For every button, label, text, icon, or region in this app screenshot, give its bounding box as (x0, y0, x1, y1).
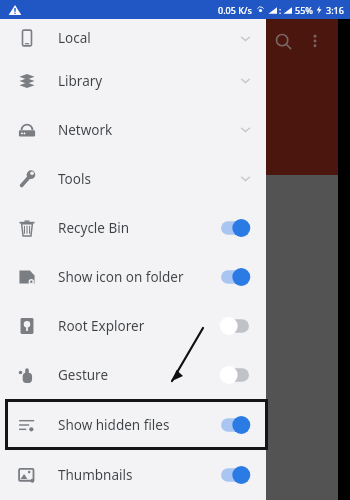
staticText: Library (58, 72, 103, 90)
staticText: Free (48, 132, 71, 147)
button[interactable]: Library (0, 56, 266, 105)
button[interactable]: Toggle off (218, 316, 252, 336)
button[interactable]: Search (270, 28, 296, 54)
staticText: Recycle Bin (58, 219, 130, 237)
button[interactable]: Toggle on (218, 218, 252, 238)
button[interactable]: Local (0, 20, 266, 56)
button[interactable]: Root Explorer (0, 301, 266, 350)
staticText: 55% (295, 4, 313, 16)
staticText: Show icon on folder (58, 268, 184, 286)
staticText: Remove ads (34, 360, 91, 374)
button[interactable]: Toggle on (218, 465, 252, 485)
button[interactable] (14, 269, 62, 317)
staticText: 515 (49, 183, 65, 195)
staticText: Show hidden files (58, 416, 170, 434)
button[interactable]: More options (302, 28, 328, 54)
staticText: : (279, 5, 282, 16)
button[interactable]: Toggle on (218, 267, 252, 287)
button[interactable]: Network (0, 105, 266, 154)
button[interactable]: Toggle on (218, 415, 252, 435)
button[interactable]: Show hidden files (0, 399, 266, 450)
button[interactable]: Thumbnails (0, 450, 266, 499)
staticText: Network (58, 121, 113, 139)
staticText: 0.05 K/s (218, 4, 252, 16)
button[interactable]: Tools (0, 154, 266, 203)
staticText: Thumbnails (58, 466, 133, 484)
staticText: Root Explorer (58, 317, 145, 335)
button[interactable]: Free (16, 126, 102, 152)
button[interactable]: Gesture (0, 350, 266, 399)
staticText: Tools (58, 170, 91, 188)
button[interactable]: Toggle off (218, 365, 252, 385)
staticText: Local (58, 29, 91, 47)
staticText: Space (16, 73, 61, 95)
button[interactable]: Remove ads (14, 355, 110, 379)
staticText: ver (2, 449, 38, 479)
button[interactable] (14, 187, 62, 235)
button[interactable]: Show icon on folder (0, 252, 266, 301)
staticText: Gesture (58, 366, 109, 384)
staticText: Cloud Drive (14, 322, 75, 337)
staticText: NEW (44, 264, 63, 275)
staticText: 3:16 (326, 4, 344, 16)
button[interactable]: Recycle Bin (0, 203, 266, 252)
